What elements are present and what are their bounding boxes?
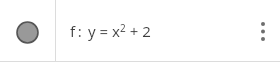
button[interactable]: More options [246, 0, 280, 64]
button[interactable]: Toggle function visibility [0, 0, 55, 64]
staticText: f : y = x2 + 2 [70, 21, 151, 41]
button[interactable]: f : y = x2 + 2 [56, 0, 246, 64]
